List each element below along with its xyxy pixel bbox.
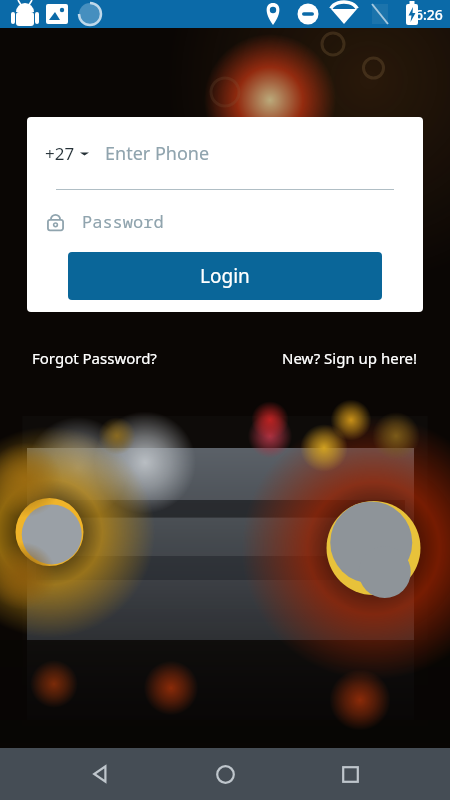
button[interactable]: Login <box>68 252 382 300</box>
staticText: Forgot Password? <box>32 348 157 368</box>
staticText: Login <box>200 263 250 289</box>
button[interactable]: Forgot Password? <box>30 346 159 370</box>
button[interactable]: Password <box>27 190 423 252</box>
staticText: New? Sign up here! <box>282 348 418 368</box>
button[interactable]: Back <box>77 750 125 798</box>
button[interactable]: Home <box>201 750 249 798</box>
staticText: 6:26 <box>415 5 443 24</box>
button[interactable]: +27 <box>27 117 423 189</box>
staticText: Password <box>82 210 164 233</box>
button[interactable]: New? Sign up here! <box>280 346 420 370</box>
staticText: Enter Phone <box>105 141 210 166</box>
staticText: +27 <box>45 142 75 165</box>
button[interactable]: Recent apps <box>326 750 374 798</box>
